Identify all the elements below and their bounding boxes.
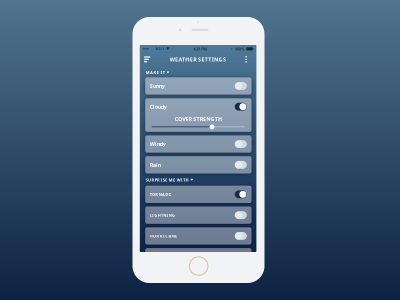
staticText: SURPRISE ME WITH: [146, 177, 189, 182]
staticText: TORNADO: [150, 192, 171, 197]
staticText: Cloudy: [150, 103, 167, 110]
button[interactable]: TORNADO: [145, 186, 251, 203]
button[interactable]: Filter: [144, 53, 155, 65]
staticText: 4:21 PM: [193, 46, 207, 51]
staticText: MAKE IT: [146, 70, 165, 75]
staticText: Rain: [150, 161, 161, 168]
button[interactable]: Sunny: [145, 77, 251, 95]
button[interactable]: LIGHTNING: [145, 206, 251, 224]
staticText: COVER STRENGTH: [175, 115, 222, 122]
button[interactable]: SURPRISE ME WITH: [145, 177, 251, 182]
button[interactable]: More options: [241, 53, 252, 65]
staticText: HURRICANE: [150, 233, 177, 239]
staticText: WEATHER SETTINGS: [170, 56, 226, 63]
staticText: Sunny: [150, 82, 165, 89]
staticText: LIGHTNING: [150, 212, 175, 218]
button[interactable]: HURRICANE: [145, 227, 251, 245]
staticText: Windy: [150, 140, 166, 148]
button[interactable]: MAKE IT: [145, 70, 251, 75]
button[interactable]: Rain: [145, 156, 251, 173]
button[interactable]: Windy: [145, 135, 251, 153]
staticText: BELL: [155, 46, 165, 51]
staticText: 100%: [235, 46, 245, 51]
button[interactable]: HEAT WAVE: [145, 248, 251, 265]
